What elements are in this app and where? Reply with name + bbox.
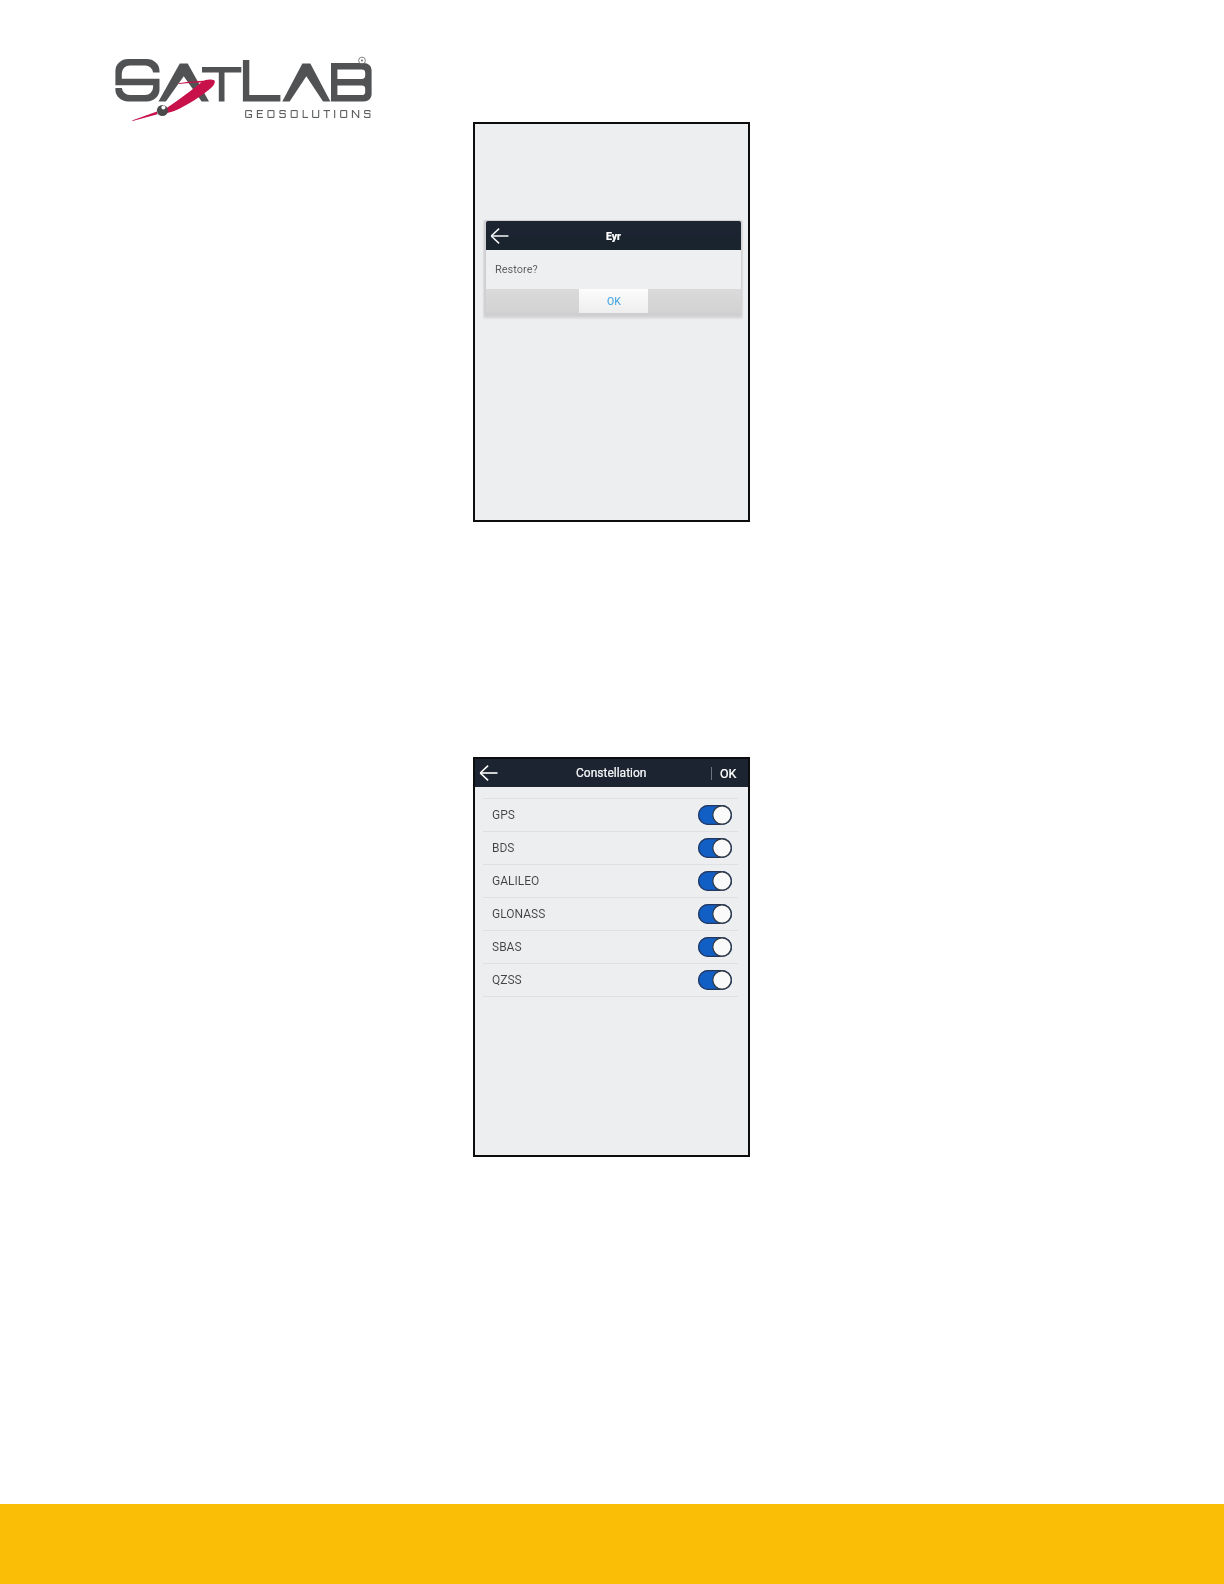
- button[interactable]: SBAS: [475, 930, 748, 963]
- staticText: GLONASS: [492, 907, 546, 921]
- button[interactable]: Back: [480, 765, 498, 781]
- staticText: Constellation: [576, 766, 647, 780]
- staticText: Eyr: [606, 230, 621, 242]
- button[interactable]: GALILEO: [475, 864, 748, 897]
- button[interactable]: QZSS: [475, 963, 748, 996]
- staticText: OK: [720, 766, 737, 781]
- button[interactable]: BDS: [475, 831, 748, 864]
- staticText: QZSS: [492, 973, 522, 987]
- button[interactable]: Back: [491, 228, 509, 244]
- button[interactable]: GPS: [475, 798, 748, 831]
- staticText: BDS: [492, 841, 515, 855]
- staticText: GALILEO: [492, 874, 540, 888]
- button[interactable]: OK: [579, 289, 648, 313]
- staticText: OK: [607, 295, 621, 307]
- staticText: Restore?: [495, 263, 538, 276]
- button[interactable]: GLONASS: [475, 897, 748, 930]
- staticText: SBAS: [492, 940, 522, 954]
- staticText: GEOSOLUTIONS: [244, 109, 375, 120]
- button[interactable]: OK: [712, 766, 748, 781]
- staticText: GPS: [492, 808, 515, 822]
